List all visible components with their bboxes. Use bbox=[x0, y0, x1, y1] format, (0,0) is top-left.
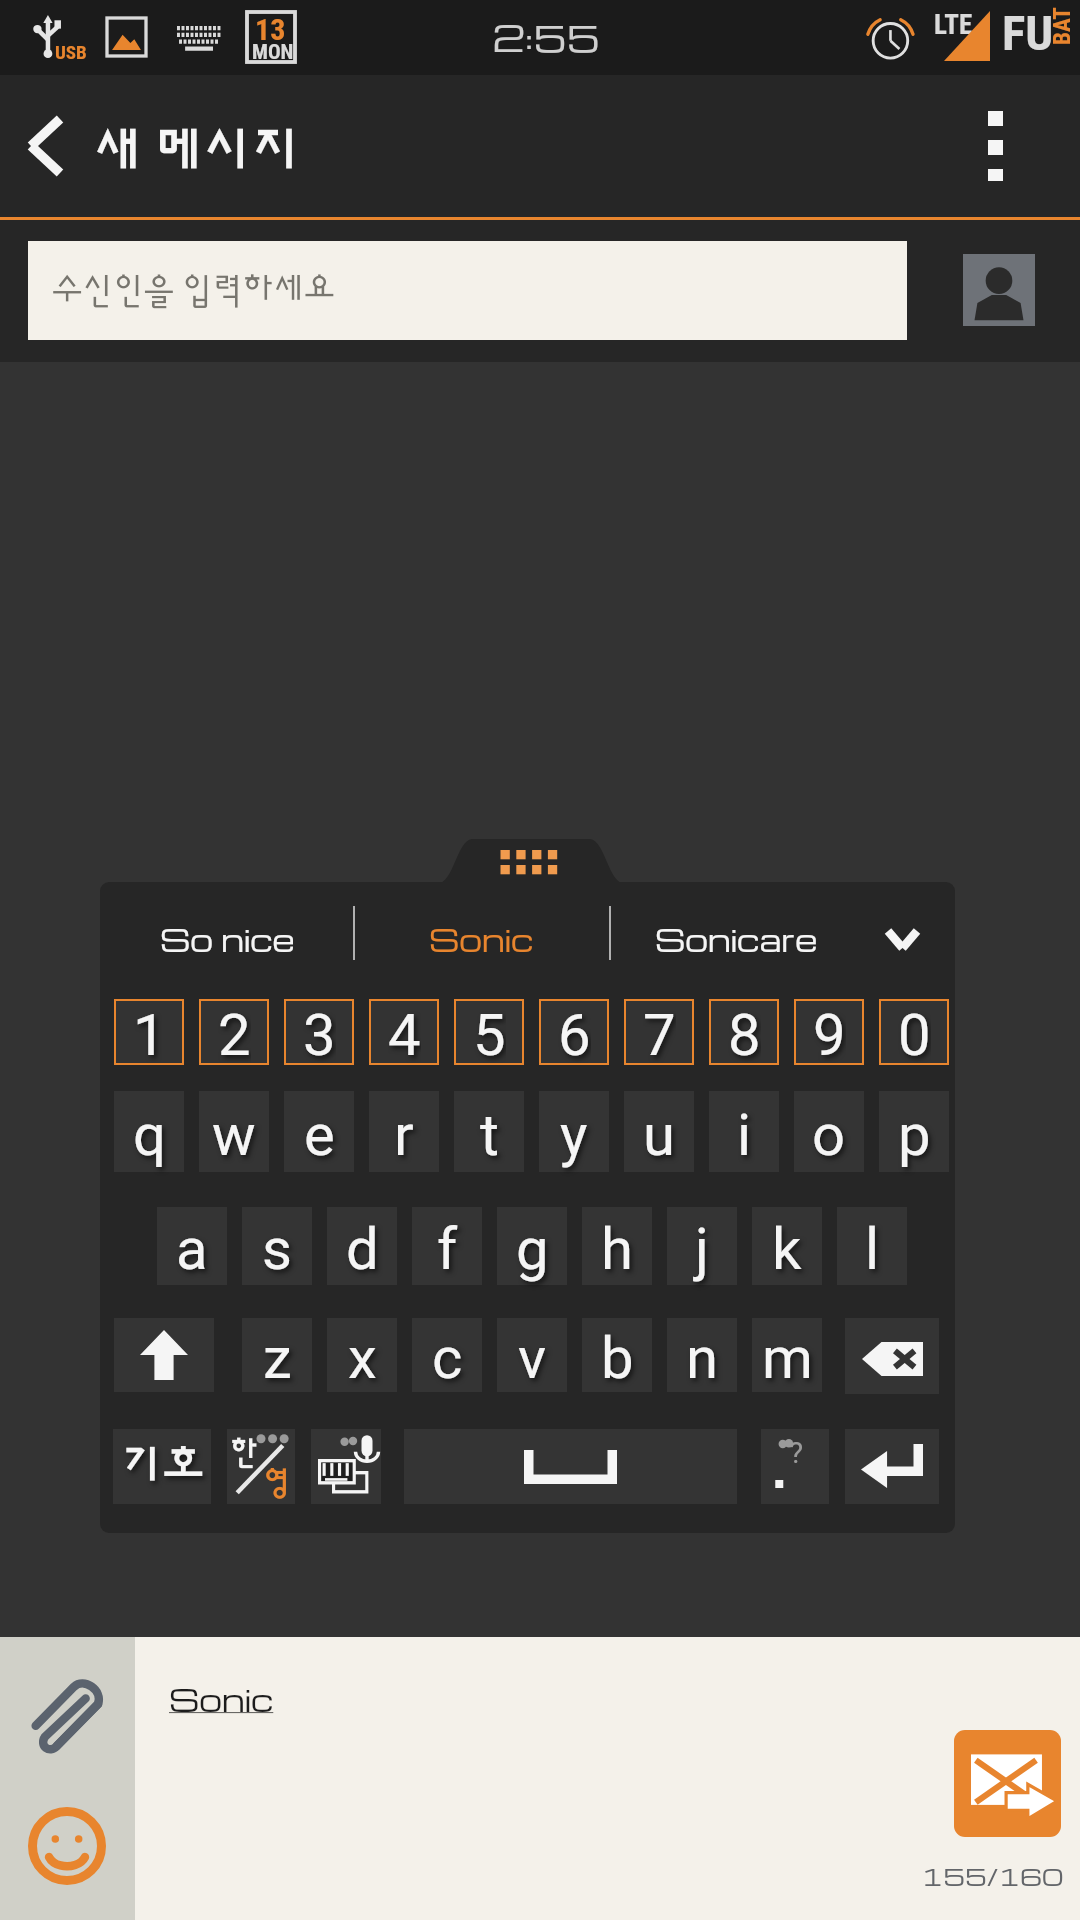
staticText: 9 bbox=[813, 1001, 846, 1067]
staticText: 8 bbox=[728, 1001, 761, 1067]
button[interactable]: 4 bbox=[369, 999, 439, 1065]
button[interactable]: Space bbox=[404, 1429, 737, 1504]
staticText: 2 bbox=[218, 1001, 251, 1067]
button[interactable]: l bbox=[837, 1207, 907, 1285]
staticText: s bbox=[262, 1215, 292, 1283]
button[interactable]: Send message bbox=[954, 1730, 1061, 1837]
button[interactable]: Shift bbox=[114, 1318, 214, 1392]
staticText: m bbox=[762, 1324, 813, 1392]
staticText: l bbox=[865, 1215, 880, 1283]
button[interactable]: m bbox=[752, 1318, 822, 1392]
staticText: u bbox=[643, 1101, 675, 1169]
button[interactable]: More options bbox=[943, 75, 1080, 217]
staticText: 새 메시지 bbox=[94, 128, 301, 182]
button[interactable]: t bbox=[454, 1091, 524, 1172]
staticText: 1 bbox=[133, 1001, 166, 1067]
button[interactable]: Backspace bbox=[845, 1318, 939, 1394]
staticText: 0 bbox=[898, 1001, 931, 1067]
button[interactable]: w bbox=[199, 1091, 269, 1172]
button[interactable]: b bbox=[582, 1318, 652, 1392]
button[interactable]: h bbox=[582, 1207, 652, 1285]
staticText: 수신인을 입력하세요 bbox=[52, 274, 335, 308]
button[interactable]: n bbox=[667, 1318, 737, 1392]
staticText: 4 bbox=[388, 1001, 421, 1067]
staticText: p bbox=[898, 1101, 931, 1169]
button[interactable]: e bbox=[284, 1091, 354, 1172]
button[interactable]: k bbox=[752, 1207, 822, 1285]
staticText: z bbox=[263, 1324, 292, 1392]
staticText: k bbox=[772, 1215, 802, 1283]
staticText: w bbox=[212, 1101, 256, 1169]
button[interactable]: Enter bbox=[845, 1429, 939, 1504]
staticText: d bbox=[346, 1215, 379, 1283]
button[interactable]: u bbox=[624, 1091, 694, 1172]
button[interactable]: 2 bbox=[199, 999, 269, 1065]
button[interactable]: Switch keyboard bbox=[311, 1429, 381, 1504]
button[interactable]: Back bbox=[0, 75, 331, 217]
button[interactable]: Sonic bbox=[169, 1678, 274, 1719]
button[interactable]: Choose contact bbox=[963, 254, 1035, 326]
button[interactable]: g bbox=[497, 1207, 567, 1285]
staticText: h bbox=[601, 1215, 633, 1283]
button[interactable]: z bbox=[242, 1318, 312, 1392]
button[interactable]: 수신인을 입력하세요 bbox=[28, 241, 907, 340]
staticText: t bbox=[480, 1101, 499, 1169]
button[interactable]: i bbox=[709, 1091, 779, 1172]
button[interactable]: y bbox=[539, 1091, 609, 1172]
button[interactable]: 5 bbox=[454, 999, 524, 1065]
button[interactable]: 7 bbox=[624, 999, 694, 1065]
staticText: y bbox=[560, 1101, 588, 1169]
staticText: LTE bbox=[934, 9, 973, 41]
staticText: f bbox=[437, 1215, 458, 1283]
button[interactable]: 기호 bbox=[113, 1429, 211, 1504]
button[interactable]: 1 bbox=[114, 999, 184, 1065]
other: Back bbox=[29, 117, 61, 175]
staticText: 2:55 bbox=[492, 12, 600, 62]
button[interactable]: r bbox=[369, 1091, 439, 1172]
button[interactable]: 9 bbox=[794, 999, 864, 1065]
staticText: 7 bbox=[643, 1001, 676, 1067]
staticText: j bbox=[695, 1215, 709, 1283]
button[interactable]: 8 bbox=[709, 999, 779, 1065]
button[interactable]: d bbox=[327, 1207, 397, 1285]
button[interactable]: Emoticons bbox=[19, 1798, 115, 1894]
button[interactable]: f bbox=[412, 1207, 482, 1285]
button[interactable]: o bbox=[794, 1091, 864, 1172]
button[interactable]: Sonicare bbox=[611, 882, 856, 982]
staticText: 3 bbox=[303, 1001, 336, 1067]
button[interactable]: Period bbox=[761, 1429, 829, 1504]
staticText: FU bbox=[1002, 5, 1054, 62]
button[interactable]: More suggestions bbox=[856, 882, 955, 982]
staticText: i bbox=[737, 1101, 752, 1169]
button[interactable]: So nice bbox=[100, 882, 400, 982]
button[interactable]: c bbox=[412, 1318, 482, 1392]
button[interactable]: q bbox=[114, 1091, 184, 1172]
button[interactable]: a bbox=[157, 1207, 227, 1285]
button[interactable]: p bbox=[879, 1091, 949, 1172]
button[interactable]: 3 bbox=[284, 999, 354, 1065]
staticText: MON bbox=[252, 40, 294, 65]
staticText: o bbox=[812, 1101, 846, 1169]
staticText: g bbox=[516, 1215, 549, 1283]
staticText: ? bbox=[789, 1435, 804, 1470]
button[interactable]: 0 bbox=[879, 999, 949, 1065]
staticText: 13 bbox=[255, 12, 286, 47]
staticText: 한 bbox=[230, 1438, 258, 1469]
button[interactable]: j bbox=[667, 1207, 737, 1285]
button[interactable]: Attach bbox=[22, 1670, 118, 1766]
button[interactable]: s bbox=[242, 1207, 312, 1285]
button[interactable]: v bbox=[497, 1318, 567, 1392]
button[interactable]: Change language bbox=[227, 1429, 295, 1504]
staticText: n bbox=[686, 1324, 719, 1392]
button[interactable]: Sonic bbox=[355, 882, 610, 982]
staticText: 6 bbox=[558, 1001, 591, 1067]
staticText: q bbox=[133, 1101, 166, 1169]
staticText: x bbox=[348, 1324, 377, 1392]
staticText: 기호 bbox=[121, 1446, 204, 1492]
staticText: So nice bbox=[160, 918, 295, 959]
button[interactable]: x bbox=[327, 1318, 397, 1392]
staticText: e bbox=[304, 1101, 335, 1169]
button[interactable]: 6 bbox=[539, 999, 609, 1065]
staticText: Sonic bbox=[429, 918, 534, 959]
staticText: BAT bbox=[1049, 7, 1075, 45]
